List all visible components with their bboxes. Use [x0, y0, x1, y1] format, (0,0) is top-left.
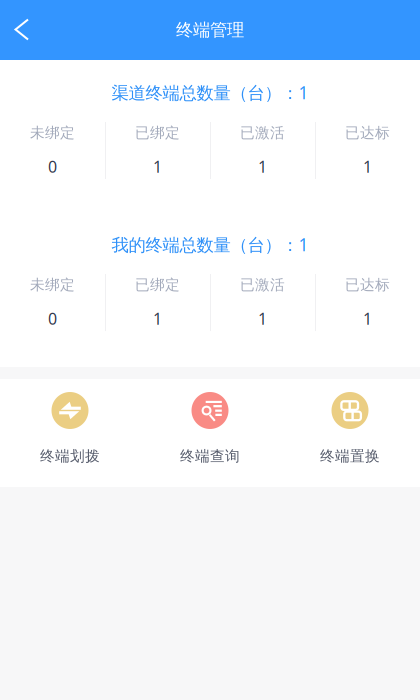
staticText: 终端划拨 — [40, 447, 100, 465]
staticText: 终端管理 — [176, 19, 244, 41]
staticText: 已激活 — [240, 276, 285, 294]
staticText: 1 — [363, 308, 372, 329]
button[interactable]: 终端划拨 — [0, 379, 140, 487]
staticText: 终端查询 — [180, 447, 240, 465]
staticText: 未绑定 — [30, 276, 75, 294]
staticText: 已达标 — [345, 124, 390, 142]
staticText: 已达标 — [345, 276, 390, 294]
staticText: 已激活 — [240, 124, 285, 142]
staticText: 渠道终端总数量（台）：1 — [111, 81, 308, 104]
staticText: 0 — [48, 308, 57, 329]
staticText: 1 — [153, 308, 162, 329]
button[interactable]: 终端查询 — [140, 379, 280, 487]
staticText: 已绑定 — [135, 276, 180, 294]
button[interactable]: 终端置换 — [280, 379, 420, 487]
staticText: 1 — [258, 308, 267, 329]
staticText: 1 — [258, 156, 267, 177]
staticText: 已绑定 — [135, 124, 180, 142]
button[interactable]: Back — [0, 5, 44, 55]
staticText: 0 — [48, 156, 57, 177]
staticText: 未绑定 — [30, 124, 75, 142]
staticText: 1 — [363, 156, 372, 177]
staticText: 终端置换 — [320, 447, 380, 465]
staticText: 1 — [153, 156, 162, 177]
staticText: 我的终端总数量（台）：1 — [111, 233, 308, 256]
